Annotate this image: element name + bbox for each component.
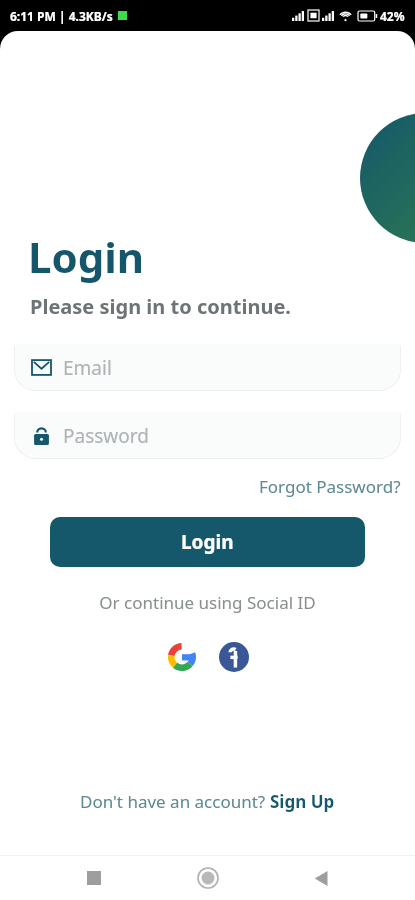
staticText: Sign Up [270,790,335,813]
staticText: Login [28,228,145,285]
staticText: Or continue using Social ID [0,591,415,614]
staticText: 42% [380,8,405,24]
button[interactable]: Don't have an account? [76,786,339,817]
staticText: Don't have an account? [80,790,270,813]
button[interactable]: Forgot Password? [259,473,415,500]
staticText: Password [63,423,149,449]
button[interactable]: Password [14,412,401,459]
staticText: Email [63,355,112,381]
button[interactable]: Email [14,344,401,391]
staticText: Please sign in to continue. [30,293,291,320]
button[interactable]: Login [50,517,365,567]
button[interactable]: Sign in with Google [165,640,199,674]
staticText: Login [181,529,234,555]
button[interactable]: Back [301,858,341,898]
button[interactable]: Home [188,858,228,898]
staticText: 6:11 PM | 4.3KB/s [10,8,113,24]
staticText: Forgot Password? [259,475,401,498]
button[interactable]: Recent apps [74,858,114,898]
button[interactable]: Sign in with Facebook [217,640,251,674]
